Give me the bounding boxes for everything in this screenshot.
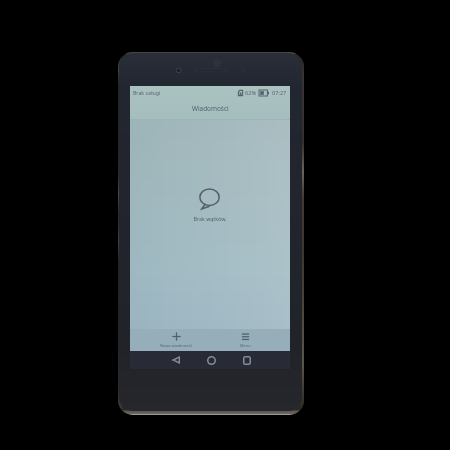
button[interactable]: Menu [220, 329, 270, 351]
staticText: 07:27 [272, 89, 287, 97]
staticText: Menu [240, 343, 251, 348]
staticText: Brak usługi [133, 89, 161, 96]
button[interactable]: Back [167, 351, 185, 369]
button[interactable]: Nowa wiadomość [142, 329, 210, 351]
staticText: Brak wątków. [193, 215, 227, 222]
staticText: Wiadomości [192, 104, 229, 113]
button[interactable]: Home [202, 351, 220, 369]
button[interactable]: Recents [238, 351, 256, 369]
staticText: Nowa wiadomość [160, 343, 193, 348]
staticText: 62% [245, 89, 257, 97]
